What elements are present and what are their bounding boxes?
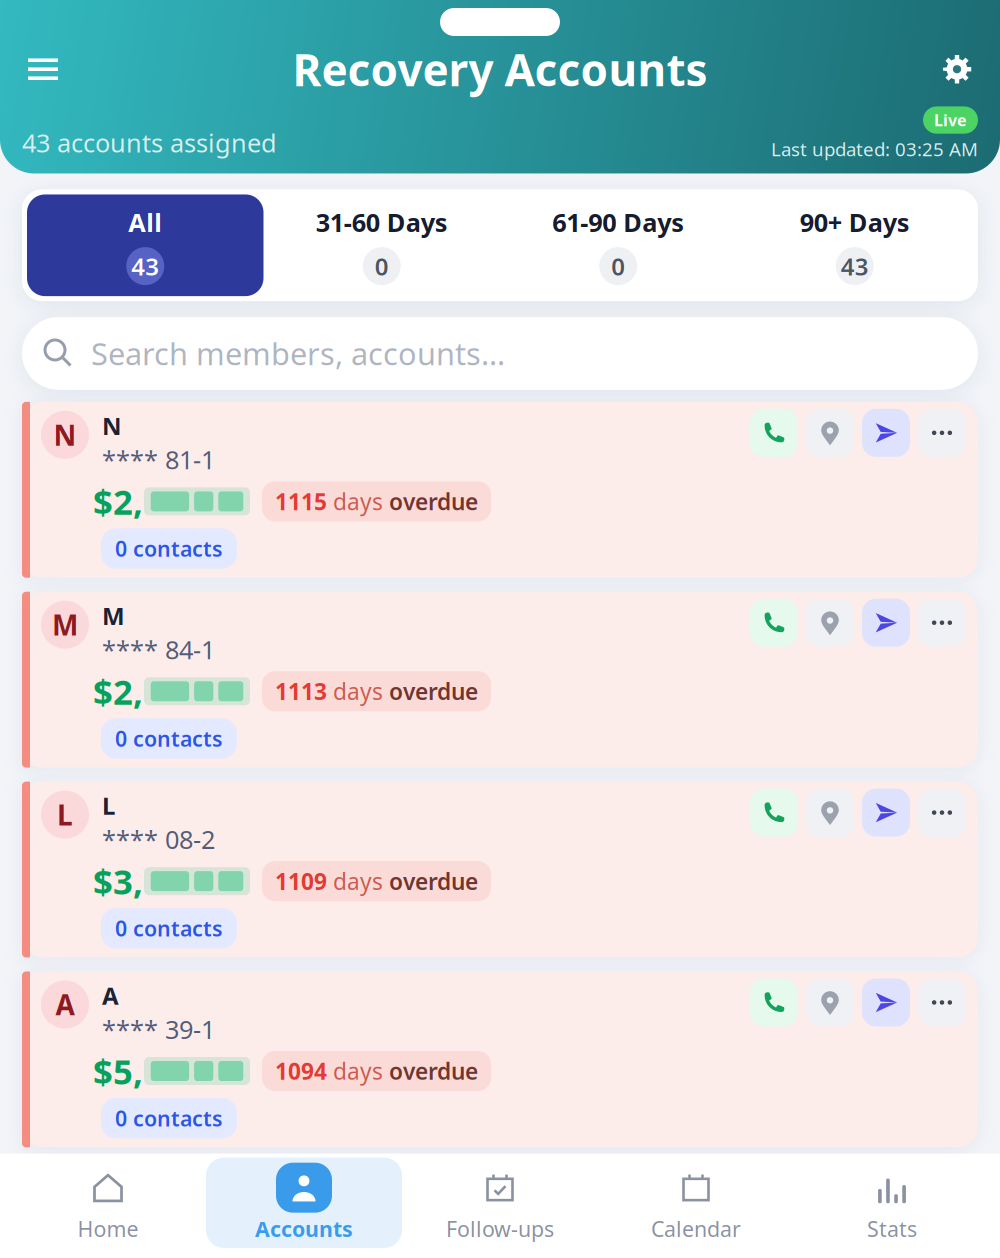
- staticText: 1115: [275, 486, 333, 516]
- staticText: overdue: [389, 486, 478, 516]
- staticText: All: [128, 205, 162, 239]
- staticText: $2,: [93, 668, 143, 714]
- staticText: $2,: [93, 478, 143, 524]
- button[interactable]: Location: [806, 978, 854, 1026]
- button[interactable]: A: [22, 971, 978, 1147]
- staticText: Last updated: 03:25 AM: [771, 137, 978, 161]
- staticText: Accounts: [255, 1215, 353, 1243]
- button[interactable]: Call: [750, 978, 798, 1026]
- button[interactable]: Send message: [862, 1168, 910, 1216]
- staticText: Follow-ups: [446, 1215, 554, 1243]
- staticText: 43: [131, 250, 159, 282]
- button[interactable]: Send message: [862, 599, 910, 647]
- staticText: Live: [934, 109, 967, 131]
- button[interactable]: More options: [918, 789, 966, 837]
- staticText: 43: [841, 250, 869, 282]
- button[interactable]: Send message: [862, 978, 910, 1026]
- staticText: 90+ Days: [800, 205, 910, 239]
- staticText: M: [102, 1169, 125, 1201]
- staticText: days: [333, 866, 389, 896]
- staticText: Calendar: [651, 1215, 741, 1243]
- staticText: 0 contacts: [115, 534, 223, 563]
- staticText: 0: [611, 250, 625, 282]
- button[interactable]: Menu: [22, 51, 64, 87]
- staticText: 0: [375, 250, 389, 282]
- staticText: overdue: [389, 676, 478, 706]
- staticText: **** 81-1: [102, 443, 215, 476]
- staticText: days: [333, 486, 389, 516]
- button[interactable]: Stats: [794, 1158, 990, 1248]
- button[interactable]: Accounts: [206, 1158, 402, 1248]
- staticText: 43 accounts assigned: [22, 126, 277, 159]
- button[interactable]: Calendar: [598, 1158, 794, 1248]
- button[interactable]: L: [22, 782, 978, 957]
- staticText: days: [333, 1246, 389, 1258]
- button[interactable]: More options: [918, 978, 966, 1026]
- staticText: 1088: [275, 1246, 333, 1258]
- staticText: A: [55, 986, 74, 1023]
- staticText: **** 84-1: [102, 633, 215, 666]
- staticText: N: [102, 410, 122, 442]
- button[interactable]: N: [22, 402, 978, 578]
- staticText: Search members, accounts...: [91, 333, 505, 374]
- button[interactable]: Settings: [936, 48, 978, 90]
- staticText: 61-90 Days: [552, 205, 684, 239]
- button[interactable]: Call: [750, 599, 798, 647]
- button[interactable]: Send message: [862, 409, 910, 457]
- staticText: M: [102, 600, 125, 632]
- staticText: 0 contacts: [115, 724, 223, 753]
- button[interactable]: Send message: [862, 789, 910, 837]
- staticText: **** 39-1: [102, 1012, 215, 1046]
- button[interactable]: Call: [750, 789, 798, 837]
- button[interactable]: 61-90 Days: [500, 194, 736, 296]
- button[interactable]: Follow-ups: [402, 1158, 598, 1248]
- staticText: 0 contacts: [115, 1104, 223, 1132]
- staticText: $5,: [93, 1048, 143, 1094]
- button[interactable]: All: [27, 194, 263, 296]
- staticText: **** 08-2: [102, 822, 215, 856]
- staticText: Home: [77, 1215, 138, 1243]
- button[interactable]: More options: [918, 409, 966, 457]
- button[interactable]: Call: [750, 409, 798, 457]
- staticText: 1094: [275, 1056, 333, 1086]
- staticText: **** 87-1: [102, 1202, 215, 1236]
- button[interactable]: 90+ Days: [736, 194, 973, 296]
- staticText: 31-60 Days: [316, 205, 448, 239]
- button[interactable]: M: [22, 592, 978, 768]
- staticText: days: [333, 676, 389, 706]
- staticText: 1113: [275, 676, 333, 706]
- button[interactable]: Location: [806, 599, 854, 647]
- button[interactable]: Search members, accounts...: [22, 317, 978, 390]
- button[interactable]: M: [22, 1161, 978, 1258]
- staticText: Recovery Accounts: [292, 40, 707, 98]
- staticText: A: [102, 979, 119, 1011]
- button[interactable]: Location: [806, 789, 854, 837]
- button[interactable]: Home: [10, 1158, 206, 1248]
- staticText: L: [102, 790, 115, 821]
- button[interactable]: More options: [918, 599, 966, 647]
- staticText: L: [57, 796, 73, 833]
- staticText: $3,: [93, 858, 143, 904]
- staticText: overdue: [389, 866, 478, 896]
- button[interactable]: 31-60 Days: [263, 194, 500, 296]
- button[interactable]: Location: [806, 409, 854, 457]
- staticText: M: [52, 606, 78, 643]
- staticText: N: [53, 416, 76, 453]
- staticText: Stats: [867, 1215, 917, 1243]
- staticText: 0 contacts: [115, 914, 223, 942]
- staticText: days: [333, 1056, 389, 1086]
- staticText: 1109: [275, 866, 333, 896]
- staticText: overdue: [389, 1056, 478, 1086]
